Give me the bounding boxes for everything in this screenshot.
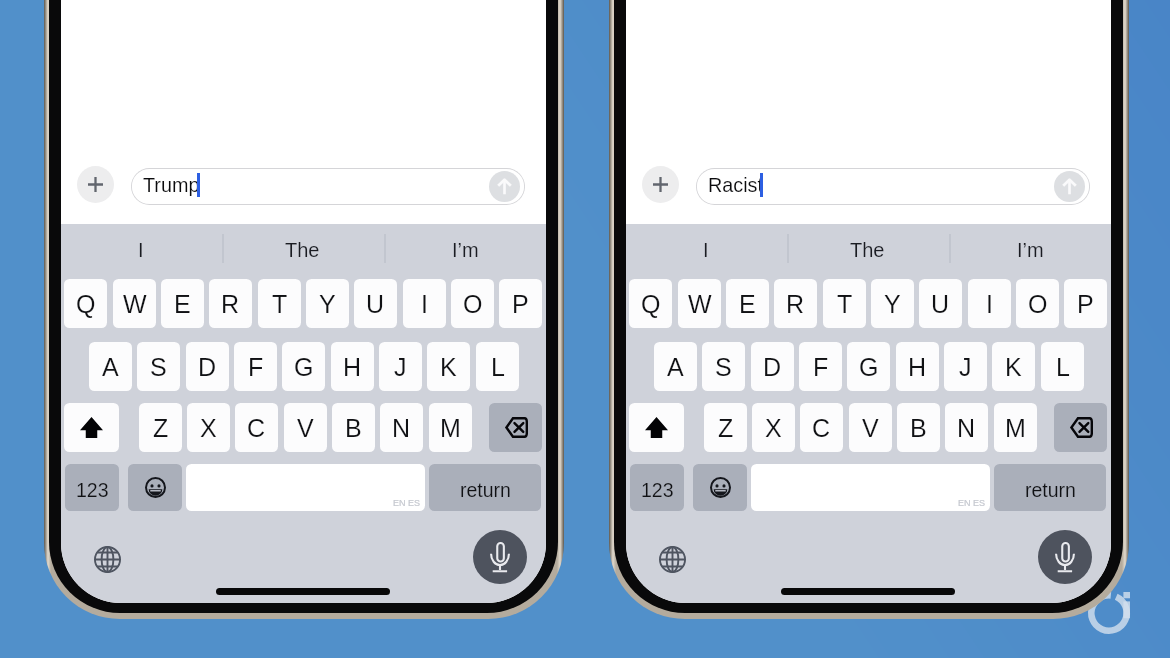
staticText: M — [440, 414, 461, 442]
staticText: X — [765, 414, 782, 442]
button[interactable]: N — [380, 403, 423, 452]
button[interactable]: D — [751, 342, 794, 391]
button[interactable]: G — [847, 342, 890, 391]
button[interactable]: Q — [629, 279, 672, 328]
button[interactable]: P — [1064, 279, 1107, 328]
button[interactable]: U — [919, 279, 962, 328]
button[interactable]: E — [161, 279, 204, 328]
button[interactable]: I’m — [420, 224, 510, 278]
button[interactable]: R — [209, 279, 252, 328]
button[interactable]: P — [499, 279, 542, 328]
button[interactable]: T — [823, 279, 866, 328]
button[interactable]: K — [992, 342, 1035, 391]
button[interactable]: E — [726, 279, 769, 328]
button[interactable]: Send — [489, 171, 520, 202]
button[interactable]: The — [257, 224, 347, 278]
button[interactable]: Z — [139, 403, 182, 452]
button[interactable]: C — [800, 403, 843, 452]
staticText: H — [343, 353, 362, 381]
button[interactable]: Emoji — [128, 464, 182, 511]
button[interactable]: I’m — [985, 224, 1075, 278]
button[interactable]: V — [849, 403, 892, 452]
staticText: return — [1025, 479, 1076, 501]
button[interactable]: N — [945, 403, 988, 452]
button[interactable]: Send — [1054, 171, 1085, 202]
staticText: M — [1005, 414, 1026, 442]
button[interactable]: I — [661, 224, 751, 278]
button[interactable]: G — [282, 342, 325, 391]
button[interactable]: X — [187, 403, 230, 452]
button[interactable]: Add attachment — [77, 166, 114, 203]
button[interactable]: The — [822, 224, 912, 278]
button[interactable]: S — [702, 342, 745, 391]
button[interactable]: I — [968, 279, 1011, 328]
button[interactable]: A — [89, 342, 132, 391]
button[interactable]: Racist — [696, 168, 1090, 205]
button[interactable]: K — [427, 342, 470, 391]
button[interactable]: Backspace — [489, 403, 542, 452]
button[interactable]: J — [379, 342, 422, 391]
staticText: N — [392, 414, 411, 442]
button[interactable]: S — [137, 342, 180, 391]
button[interactable]: W — [678, 279, 721, 328]
button[interactable]: return — [994, 464, 1106, 511]
button[interactable]: Space — [186, 464, 425, 511]
staticText: Z — [718, 414, 734, 442]
button[interactable]: Q — [64, 279, 107, 328]
button[interactable]: Shift — [629, 403, 684, 452]
button[interactable]: X — [752, 403, 795, 452]
staticText: I — [138, 239, 144, 261]
button[interactable]: Switch keyboard language — [82, 534, 132, 584]
staticText: V — [297, 414, 314, 442]
button[interactable]: Backspace — [1054, 403, 1107, 452]
button[interactable]: Dictation — [473, 530, 527, 584]
staticText: Z — [153, 414, 169, 442]
button[interactable]: I — [96, 224, 186, 278]
button[interactable]: L — [476, 342, 519, 391]
button[interactable]: V — [284, 403, 327, 452]
staticText: Y — [319, 290, 336, 318]
button[interactable]: R — [774, 279, 817, 328]
button[interactable]: 123 — [630, 464, 684, 511]
button[interactable]: Dictation — [1038, 530, 1092, 584]
staticText: N — [957, 414, 976, 442]
staticText: G — [859, 353, 879, 381]
button[interactable]: O — [451, 279, 494, 328]
button[interactable]: D — [186, 342, 229, 391]
button[interactable]: Y — [306, 279, 349, 328]
button[interactable]: U — [354, 279, 397, 328]
button[interactable]: F — [799, 342, 842, 391]
staticText: W — [123, 290, 147, 318]
button[interactable]: L — [1041, 342, 1084, 391]
button[interactable]: B — [332, 403, 375, 452]
button[interactable]: Emoji — [693, 464, 747, 511]
button[interactable]: M — [429, 403, 472, 452]
staticText: O — [463, 290, 483, 318]
button[interactable]: Switch keyboard language — [647, 534, 697, 584]
staticText: Q — [641, 290, 661, 318]
button[interactable]: O — [1016, 279, 1059, 328]
staticText: Racist — [708, 174, 764, 196]
button[interactable]: F — [234, 342, 277, 391]
button[interactable]: Trump — [131, 168, 525, 205]
button[interactable]: B — [897, 403, 940, 452]
button[interactable]: H — [331, 342, 374, 391]
button[interactable]: W — [113, 279, 156, 328]
staticText: D — [198, 353, 217, 381]
button[interactable]: Space — [751, 464, 990, 511]
button[interactable]: C — [235, 403, 278, 452]
button[interactable]: Y — [871, 279, 914, 328]
staticText: F — [248, 353, 264, 381]
button[interactable]: return — [429, 464, 541, 511]
button[interactable]: M — [994, 403, 1037, 452]
button[interactable]: A — [654, 342, 697, 391]
button[interactable]: 123 — [65, 464, 119, 511]
button[interactable]: J — [944, 342, 987, 391]
button[interactable]: I — [403, 279, 446, 328]
button[interactable]: T — [258, 279, 301, 328]
button[interactable]: H — [896, 342, 939, 391]
button[interactable]: Z — [704, 403, 747, 452]
button[interactable]: Shift — [64, 403, 119, 452]
button[interactable]: Add attachment — [642, 166, 679, 203]
staticText: R — [786, 290, 805, 318]
